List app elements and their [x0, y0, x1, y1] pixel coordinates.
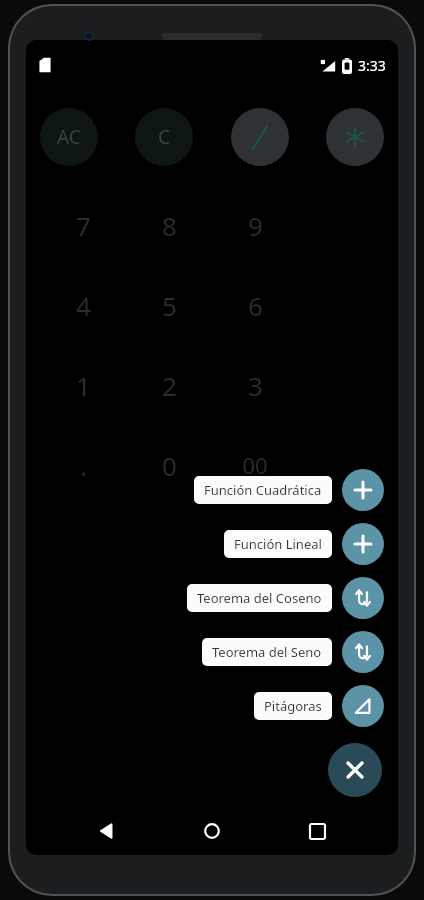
button[interactable]: 3: [212, 345, 298, 425]
staticText: 4: [76, 288, 91, 323]
button[interactable]: Cerrar: [328, 743, 382, 797]
button[interactable]: Función Lineal: [224, 523, 384, 565]
button[interactable]: Función Lineal: [342, 523, 384, 565]
button[interactable]: Operator: [231, 108, 289, 166]
staticText: 0: [162, 448, 177, 483]
staticText: 5: [162, 288, 177, 323]
button[interactable]: 5: [126, 265, 212, 345]
button[interactable]: 6: [212, 265, 298, 345]
button[interactable]: Pitágoras: [342, 685, 384, 727]
button[interactable]: Función Cuadrática: [342, 469, 384, 511]
staticText: 00: [242, 450, 268, 480]
staticText: 8: [162, 208, 177, 243]
button[interactable]: Inicio: [188, 807, 236, 855]
staticText: 3: [248, 368, 263, 403]
button[interactable]: 4: [40, 265, 126, 345]
button[interactable]: AC: [40, 108, 98, 166]
button[interactable]: Operator: [326, 108, 384, 166]
button[interactable]: 1: [40, 345, 126, 425]
button[interactable]: Teorema del Coseno: [342, 577, 384, 619]
staticText: 1: [76, 368, 91, 403]
staticText: Función Lineal: [234, 535, 322, 553]
button[interactable]: 0: [126, 425, 212, 505]
button[interactable]: C: [135, 108, 193, 166]
button[interactable]: Pitágoras: [254, 685, 384, 727]
button[interactable]: 9: [212, 185, 298, 265]
staticText: Teorema del Seno: [212, 643, 322, 661]
button[interactable]: 7: [40, 185, 126, 265]
button[interactable]: Teorema del Coseno: [187, 577, 384, 619]
button[interactable]: 2: [126, 345, 212, 425]
button[interactable]: [298, 425, 384, 505]
staticText: Pitágoras: [264, 697, 322, 715]
button[interactable]: Atrás: [83, 807, 131, 855]
staticText: 7: [76, 208, 91, 243]
button[interactable]: 00: [212, 425, 298, 505]
button[interactable]: 8: [126, 185, 212, 265]
staticText: 3:33: [358, 56, 386, 75]
staticText: 2: [162, 368, 177, 403]
button[interactable]: Teorema del Seno: [342, 631, 384, 673]
staticText: C: [158, 124, 171, 150]
staticText: 9: [248, 208, 263, 243]
staticText: AC: [57, 124, 81, 150]
button[interactable]: Teorema del Seno: [202, 631, 384, 673]
button[interactable]: Función Cuadrática: [194, 469, 384, 511]
staticText: .: [80, 448, 87, 483]
staticText: Teorema del Coseno: [197, 589, 322, 607]
staticText: 6: [248, 288, 263, 323]
button[interactable]: Recientes: [293, 807, 341, 855]
staticText: Función Cuadrática: [204, 481, 322, 499]
